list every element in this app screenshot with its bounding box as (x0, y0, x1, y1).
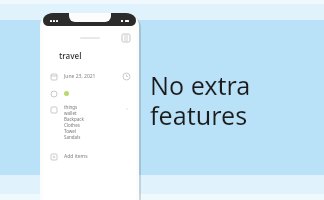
button[interactable] (43, 87, 136, 100)
staticText: Backpack (64, 116, 84, 122)
staticText: Sandals (64, 134, 81, 140)
staticText: June 23, 2021 (64, 73, 96, 80)
button[interactable]: More options (121, 33, 130, 42)
staticText: travel (59, 50, 82, 61)
staticText: No extra features (150, 68, 251, 133)
staticText: Clothes (64, 122, 80, 128)
staticText: wallet (64, 110, 77, 116)
button[interactable]: Reminder (123, 73, 130, 80)
button[interactable]: things (43, 104, 136, 140)
staticText: things (64, 104, 78, 110)
button[interactable]: June 23, 2021 (43, 70, 136, 83)
staticText: Add items (64, 153, 88, 160)
button[interactable]: Expand (125, 107, 129, 111)
staticText: Towel (64, 128, 77, 134)
button[interactable]: Add items (43, 150, 136, 163)
